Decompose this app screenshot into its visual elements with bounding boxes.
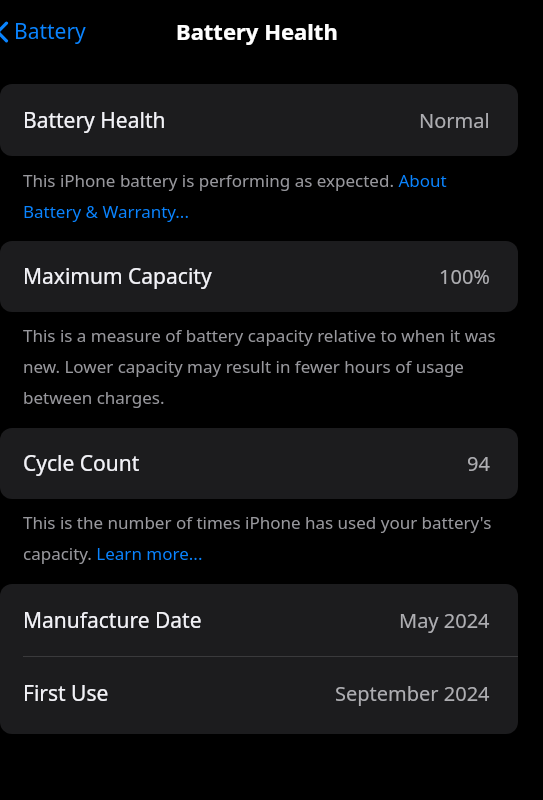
staticText: Manufacture Date [23,606,202,635]
staticText: This is a measure of battery capacity re… [23,324,503,409]
staticText: Battery [14,17,86,46]
button[interactable]: Back [0,11,96,52]
staticText: 100% [439,263,490,290]
staticText: May 2024 [399,607,490,634]
button[interactable]: Battery Health [0,84,518,156]
staticText: 94 [467,450,490,477]
staticText: This is the number of times iPhone has u… [23,511,503,565]
other: Back [0,19,10,45]
button[interactable]: Maximum Capacity [0,241,518,312]
staticText: Maximum Capacity [23,262,212,291]
button[interactable]: First Use [0,657,518,730]
staticText: Battery Health [176,16,338,46]
staticText: Battery Health [23,106,166,135]
staticText: Cycle Count [23,449,140,478]
staticText: First Use [23,679,109,708]
button[interactable]: Manufacture Date [0,584,518,656]
staticText: September 2024 [335,680,490,707]
staticText: This iPhone battery is performing as exp… [23,169,503,223]
staticText: Normal [419,107,490,134]
button[interactable]: Cycle Count [0,428,518,499]
